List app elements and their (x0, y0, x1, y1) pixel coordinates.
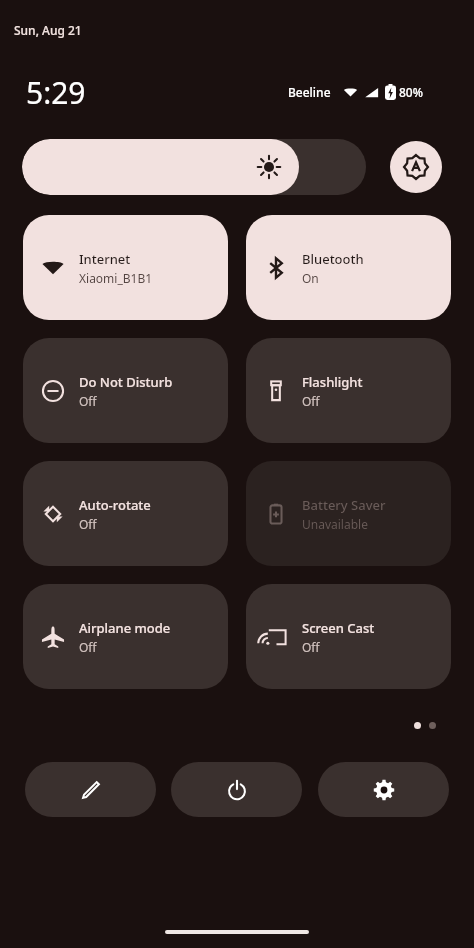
staticText: 5:29 (26, 72, 86, 113)
staticText: Off (302, 639, 320, 655)
button[interactable]: Flashlight (246, 338, 451, 443)
button[interactable]: Battery Saver (246, 461, 451, 566)
staticText: Bluetooth (302, 250, 364, 268)
button[interactable]: Screen Cast (246, 584, 451, 689)
staticText: Beeline (288, 84, 331, 100)
staticText: Off (79, 516, 97, 532)
staticText: Off (79, 639, 97, 655)
staticText: Airplane mode (79, 619, 171, 637)
staticText: Off (302, 393, 320, 409)
staticText: 80% (399, 84, 423, 100)
button[interactable]: Do Not Disturb (23, 338, 228, 443)
staticText: Do Not Disturb (79, 373, 173, 391)
staticText: Unavailable (302, 516, 368, 532)
button[interactable]: Edit tiles (25, 762, 156, 817)
staticText: Screen Cast (302, 619, 375, 637)
staticText: Battery Saver (302, 496, 386, 514)
button[interactable]: Auto-rotate (23, 461, 228, 566)
button[interactable]: Internet (23, 215, 228, 320)
staticText: Xiaomi_B1B1 (79, 270, 153, 286)
staticText: Flashlight (302, 373, 363, 391)
staticText: On (302, 270, 319, 286)
staticText: Auto-rotate (79, 496, 151, 514)
button[interactable]: Auto brightness (390, 141, 442, 193)
staticText: Sun, Aug 21 (14, 22, 82, 38)
button[interactable]: Settings (318, 762, 449, 817)
button[interactable]: Brightness (22, 139, 366, 195)
button[interactable]: Airplane mode (23, 584, 228, 689)
button[interactable]: Power (171, 762, 302, 817)
staticText: Off (79, 393, 97, 409)
button[interactable]: Bluetooth (246, 215, 451, 320)
staticText: Internet (79, 250, 131, 268)
